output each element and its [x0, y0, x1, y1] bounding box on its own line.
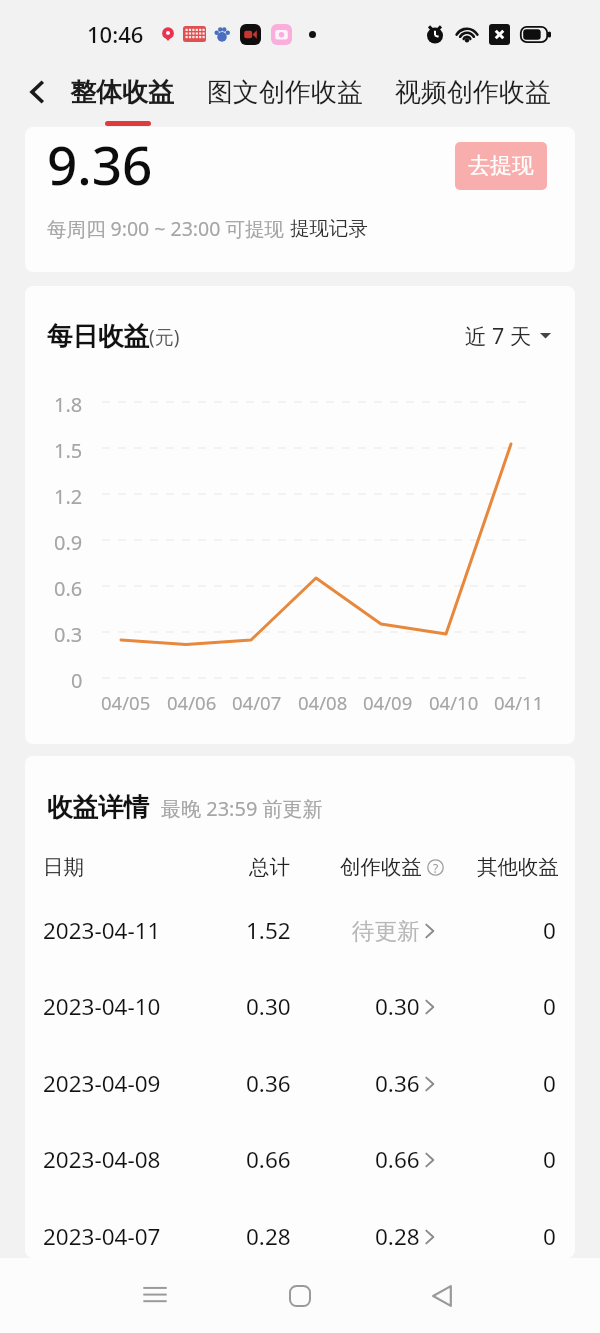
staticText: 近 7 天 — [465, 321, 532, 350]
button[interactable]: Back — [14, 68, 62, 116]
staticText: 视频创作收益 — [395, 76, 551, 109]
staticText: 0.36 — [246, 1068, 291, 1099]
staticText: 04/05 — [101, 690, 151, 714]
button[interactable]: 整体收益 — [70, 68, 174, 116]
staticText: 整体收益 — [70, 76, 174, 109]
staticText: 2023-04-09 — [43, 1068, 161, 1099]
staticText: 待更新 — [352, 917, 420, 945]
staticText: 0.66 — [246, 1144, 291, 1175]
button[interactable]: Back — [419, 1272, 467, 1320]
staticText: 0 — [543, 915, 556, 946]
staticText: 去提现 — [468, 152, 534, 180]
staticText: 0.3 — [54, 621, 83, 643]
staticText: 04/08 — [298, 690, 348, 714]
staticText: 04/09 — [363, 690, 413, 714]
button[interactable]: 图文创作收益 — [207, 68, 363, 116]
staticText: 1.2 — [54, 483, 83, 505]
staticText: 04/07 — [232, 690, 282, 714]
staticText: 最晚 23:59 前更新 — [161, 795, 323, 822]
button[interactable]: Home — [276, 1272, 324, 1320]
staticText: 每周四 9:00 ~ 23:00 可提现 — [47, 215, 284, 242]
staticText: 0.28 — [375, 1221, 420, 1252]
staticText: 2023-04-08 — [43, 1144, 161, 1175]
staticText: 0.30 — [246, 991, 291, 1022]
staticText: 2023-04-10 — [43, 991, 161, 1022]
staticText: 0 — [71, 667, 83, 689]
staticText: 0.28 — [246, 1221, 291, 1252]
button[interactable]: 2023-04-07 — [25, 1198, 575, 1258]
staticText: 2023-04-07 — [43, 1221, 161, 1252]
staticText: (元) — [149, 324, 180, 350]
staticText: 10:46 — [87, 19, 144, 49]
staticText: 日期 — [43, 854, 84, 880]
staticText: 0 — [543, 1068, 556, 1099]
staticText: 1.8 — [54, 391, 83, 413]
staticText: 1.5 — [54, 437, 83, 459]
button[interactable]: 去提现 — [455, 142, 547, 190]
staticText: 0 — [543, 1144, 556, 1175]
staticText: 收益详情 — [47, 791, 149, 823]
staticText: 0.9 — [54, 529, 83, 551]
staticText: 其他收益 — [477, 854, 559, 880]
button[interactable]: 2023-04-11 — [25, 892, 575, 969]
staticText: 0.30 — [375, 991, 420, 1022]
button[interactable]: 2023-04-09 — [25, 1045, 575, 1122]
staticText: 每日收益 — [47, 320, 149, 352]
staticText: 0.36 — [375, 1068, 420, 1099]
button[interactable]: 提现记录 — [290, 216, 368, 241]
staticText: 0 — [543, 991, 556, 1022]
staticText: 0.66 — [375, 1144, 420, 1175]
staticText: 图文创作收益 — [207, 76, 363, 109]
staticText: 04/10 — [429, 690, 479, 714]
staticText: 提现记录 — [290, 216, 368, 241]
staticText: 总计 — [249, 854, 290, 880]
staticText: 04/11 — [494, 690, 544, 714]
staticText: 1.52 — [246, 915, 291, 946]
staticText: 04/06 — [167, 690, 217, 714]
staticText: 9.36 — [47, 128, 153, 200]
button[interactable]: Recent apps — [131, 1272, 179, 1320]
button[interactable]: 2023-04-10 — [25, 968, 575, 1045]
staticText: 2023-04-11 — [43, 915, 161, 946]
staticText: ? — [433, 860, 439, 876]
staticText: 0 — [543, 1221, 556, 1252]
button[interactable]: 2023-04-08 — [25, 1121, 575, 1198]
button[interactable]: 视频创作收益 — [395, 68, 551, 116]
staticText: 0.6 — [54, 575, 83, 597]
button[interactable]: 近 7 天 — [465, 321, 551, 350]
staticText: 创作收益 — [340, 854, 422, 880]
